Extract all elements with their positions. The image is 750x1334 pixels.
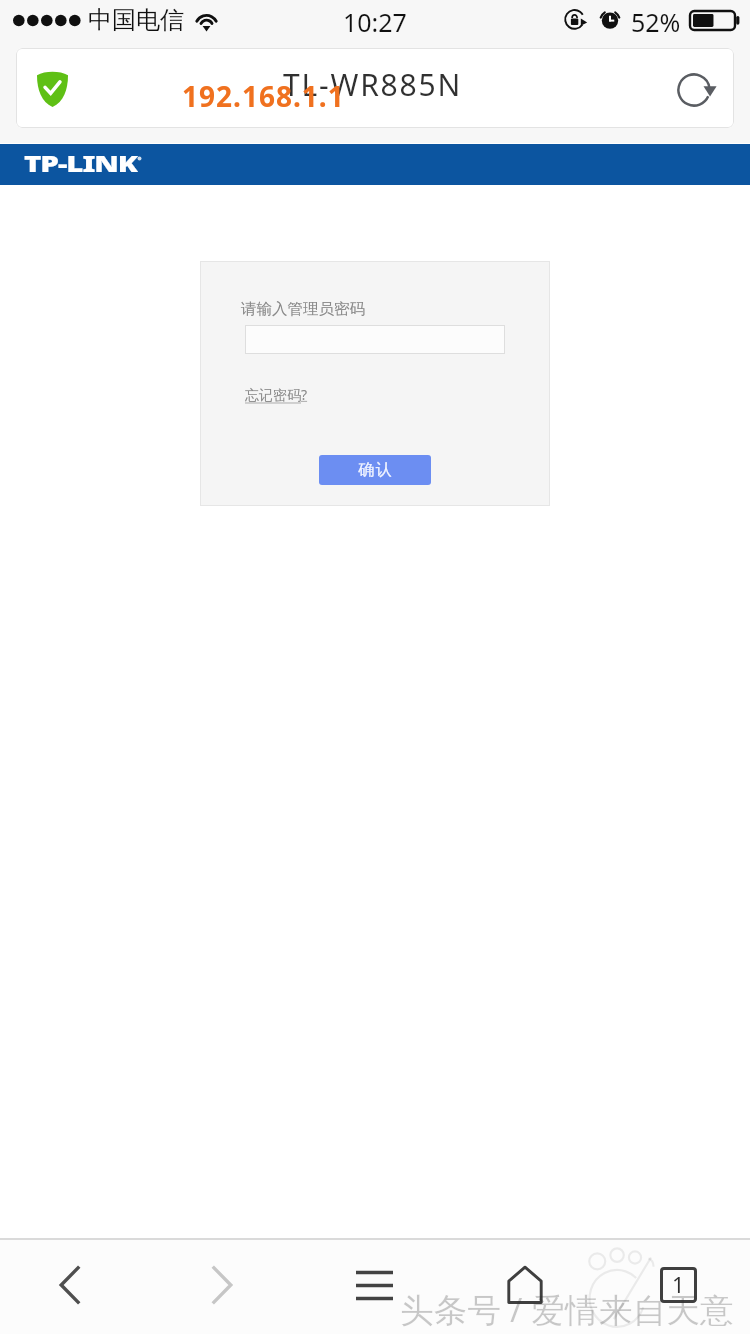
button[interactable]: Forward xyxy=(194,1257,250,1313)
staticText: 中国电信 xyxy=(88,5,184,35)
staticText: 1 xyxy=(672,1269,685,1299)
button[interactable]: 忘记密码? xyxy=(245,385,315,404)
button[interactable]: Menu xyxy=(346,1257,402,1313)
staticText: 请输入管理员密码 xyxy=(241,299,365,319)
other: Secure connection xyxy=(37,72,68,107)
button[interactable]: Reload page xyxy=(675,71,713,109)
staticText: 52% xyxy=(631,5,681,39)
staticText: 忘记密码? xyxy=(245,385,315,404)
button[interactable]: Tabs xyxy=(650,1257,706,1313)
staticText: 确认 xyxy=(358,460,392,480)
button[interactable]: Back xyxy=(42,1257,98,1313)
button[interactable]: 确认 xyxy=(319,455,431,485)
button[interactable] xyxy=(245,325,505,354)
staticText: TP-LINK xyxy=(24,148,137,178)
staticText: 10:27 xyxy=(343,5,407,39)
button[interactable]: Home xyxy=(497,1257,553,1313)
staticText: TL-WR885N xyxy=(283,64,463,105)
staticText: 头条号 / 爱情来自天意 xyxy=(400,1286,734,1332)
button[interactable]: Secure connection xyxy=(16,48,734,128)
staticText: 192.168.1.1 xyxy=(182,77,345,115)
